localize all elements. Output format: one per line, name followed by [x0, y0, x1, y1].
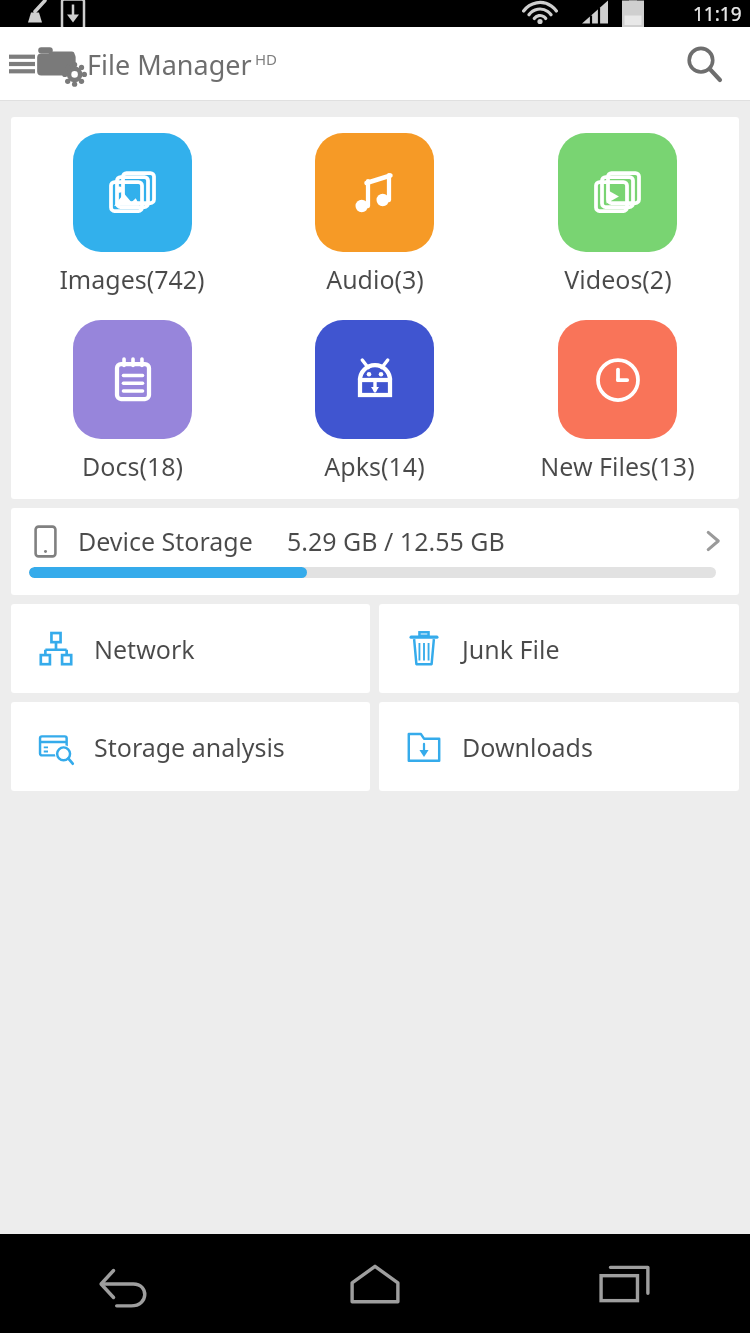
staticText: 11:19 [693, 1, 742, 27]
button[interactable]: Device Storage [11, 508, 739, 595]
staticText: Apks(14) [324, 449, 425, 483]
button[interactable]: Network [11, 604, 370, 693]
button[interactable]: Open navigation menu [0, 42, 44, 86]
staticText: Docs(18) [82, 449, 183, 483]
staticText: File Manager [87, 46, 252, 83]
button[interactable]: File Manager [33, 38, 278, 90]
staticText: Images(742) [59, 262, 205, 296]
staticText: Downloads [462, 730, 593, 764]
staticText: Videos(2) [564, 262, 672, 296]
button[interactable]: Storage analysis [11, 702, 370, 791]
button[interactable]: Recent apps [500, 1234, 750, 1333]
button[interactable]: Search [676, 36, 732, 92]
staticText: Audio(3) [326, 262, 424, 296]
button[interactable]: Home [250, 1234, 500, 1333]
button[interactable]: Docs(18) [11, 318, 253, 485]
staticText: HD [255, 49, 278, 69]
button[interactable]: Downloads [379, 702, 739, 791]
staticText: Device Storage [78, 524, 253, 558]
button[interactable]: Apks(14) [253, 318, 496, 485]
staticText: New Files(13) [540, 449, 695, 483]
button[interactable]: Back [0, 1234, 250, 1333]
staticText: Storage analysis [94, 730, 285, 764]
button[interactable]: Audio(3) [253, 131, 496, 298]
staticText: 5.29 GB / 12.55 GB [287, 524, 505, 558]
staticText: Junk File [462, 632, 560, 666]
button[interactable]: Junk File [379, 604, 739, 693]
staticText: Network [94, 632, 195, 666]
button[interactable]: New Files(13) [496, 318, 739, 485]
button[interactable]: Images(742) [11, 131, 253, 298]
button[interactable]: Videos(2) [496, 131, 739, 298]
